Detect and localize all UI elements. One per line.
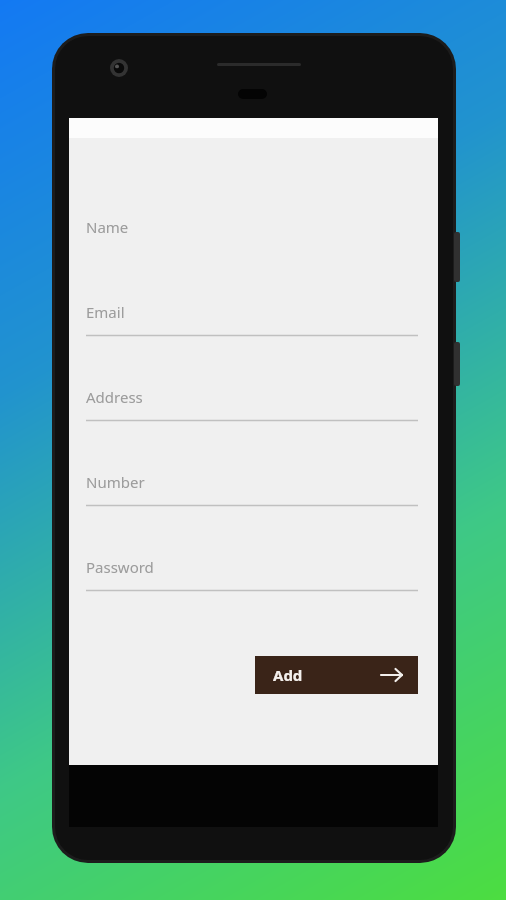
button[interactable]: Password [69,557,438,642]
staticText: Add [273,665,303,685]
button[interactable]: Address [69,387,438,472]
staticText: Name [86,217,129,237]
button[interactable]: Number [69,472,438,557]
staticText: Password [86,557,154,577]
staticText: Email [86,302,125,322]
other: Submit [381,668,402,682]
staticText: Address [86,387,143,407]
button[interactable]: Add [255,656,418,694]
button[interactable]: Email [69,302,438,387]
button[interactable]: Name [69,217,438,302]
staticText: Number [86,472,145,492]
